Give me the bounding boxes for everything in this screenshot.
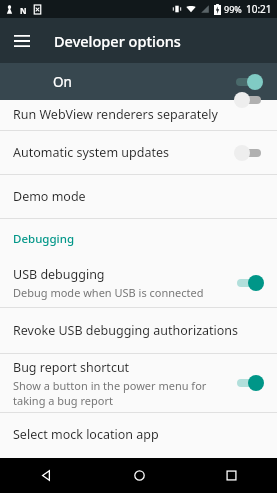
staticText: Debugging [13, 231, 75, 247]
button[interactable]: Select mock location app [0, 413, 277, 456]
staticText: Run WebView renderers separately [13, 106, 264, 123]
staticText: Debug mode when USB is connected [13, 285, 204, 300]
button[interactable]: Back [0, 458, 93, 493]
button[interactable]: Recent apps [185, 458, 277, 493]
button[interactable]: USB debugging [0, 259, 277, 307]
staticText: USB debugging [13, 266, 105, 283]
staticText: 10:21 [246, 2, 272, 16]
staticText: Bug report shortcut [13, 359, 130, 376]
staticText: 99% [224, 3, 242, 15]
staticText: Show a button in the power menu for taki… [13, 378, 207, 408]
staticText: On [53, 73, 72, 91]
button[interactable]: Open navigation drawer [6, 25, 38, 57]
staticText: Revoke USB debugging authorizations [13, 322, 239, 339]
button[interactable]: Home [93, 458, 185, 493]
button[interactable]: Demo mode [0, 175, 277, 218]
staticText: Demo mode [13, 188, 86, 205]
staticText: N [20, 5, 27, 14]
button[interactable]: Run WebView renderers separately [0, 100, 277, 130]
button[interactable]: Revoke USB debugging authorizations [0, 308, 277, 353]
staticText: Automatic system updates [13, 144, 169, 161]
button[interactable]: Bug report shortcut [0, 354, 277, 412]
button[interactable]: On [0, 63, 277, 100]
staticText: Select mock location app [13, 426, 159, 443]
button[interactable]: Automatic system updates [0, 131, 277, 174]
staticText: Developer options [54, 31, 181, 51]
